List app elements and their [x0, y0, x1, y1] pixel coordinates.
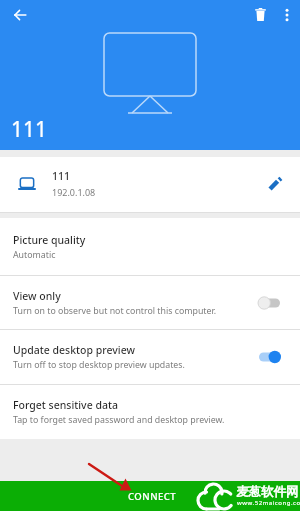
button[interactable]: CONNECT — [0, 481, 300, 511]
button[interactable]: Update desktop preview — [0, 330, 300, 384]
button[interactable]: More options — [272, 0, 300, 29]
button[interactable] — [254, 347, 280, 367]
staticText: Turn on to observe but not control this … — [13, 305, 217, 317]
staticText: View only — [13, 289, 61, 303]
staticText: www.52maicong.com — [237, 499, 300, 507]
staticText: CONNECT — [128, 490, 177, 503]
staticText: Forget sensitive data — [13, 398, 118, 412]
button[interactable]: Picture quality — [0, 218, 300, 275]
button[interactable]: Delete — [245, 0, 275, 29]
button[interactable]: 111 — [0, 157, 300, 212]
staticText: 192.0.1.08 — [52, 186, 96, 198]
staticText: Picture quality — [13, 233, 86, 247]
staticText: 麦葱软件网 — [236, 484, 299, 500]
staticText: Tap to forget saved password and desktop… — [13, 414, 225, 426]
button[interactable]: View only — [0, 276, 300, 329]
button[interactable] — [254, 293, 280, 313]
button[interactable]: Back — [5, 0, 35, 29]
staticText: Automatic — [13, 249, 56, 261]
staticText: 111 — [11, 115, 48, 144]
button[interactable]: Forget sensitive data — [0, 385, 300, 439]
staticText: Turn off to stop desktop preview updates… — [13, 359, 185, 371]
staticText: Update desktop preview — [13, 343, 135, 357]
staticText: 111 — [52, 169, 71, 183]
